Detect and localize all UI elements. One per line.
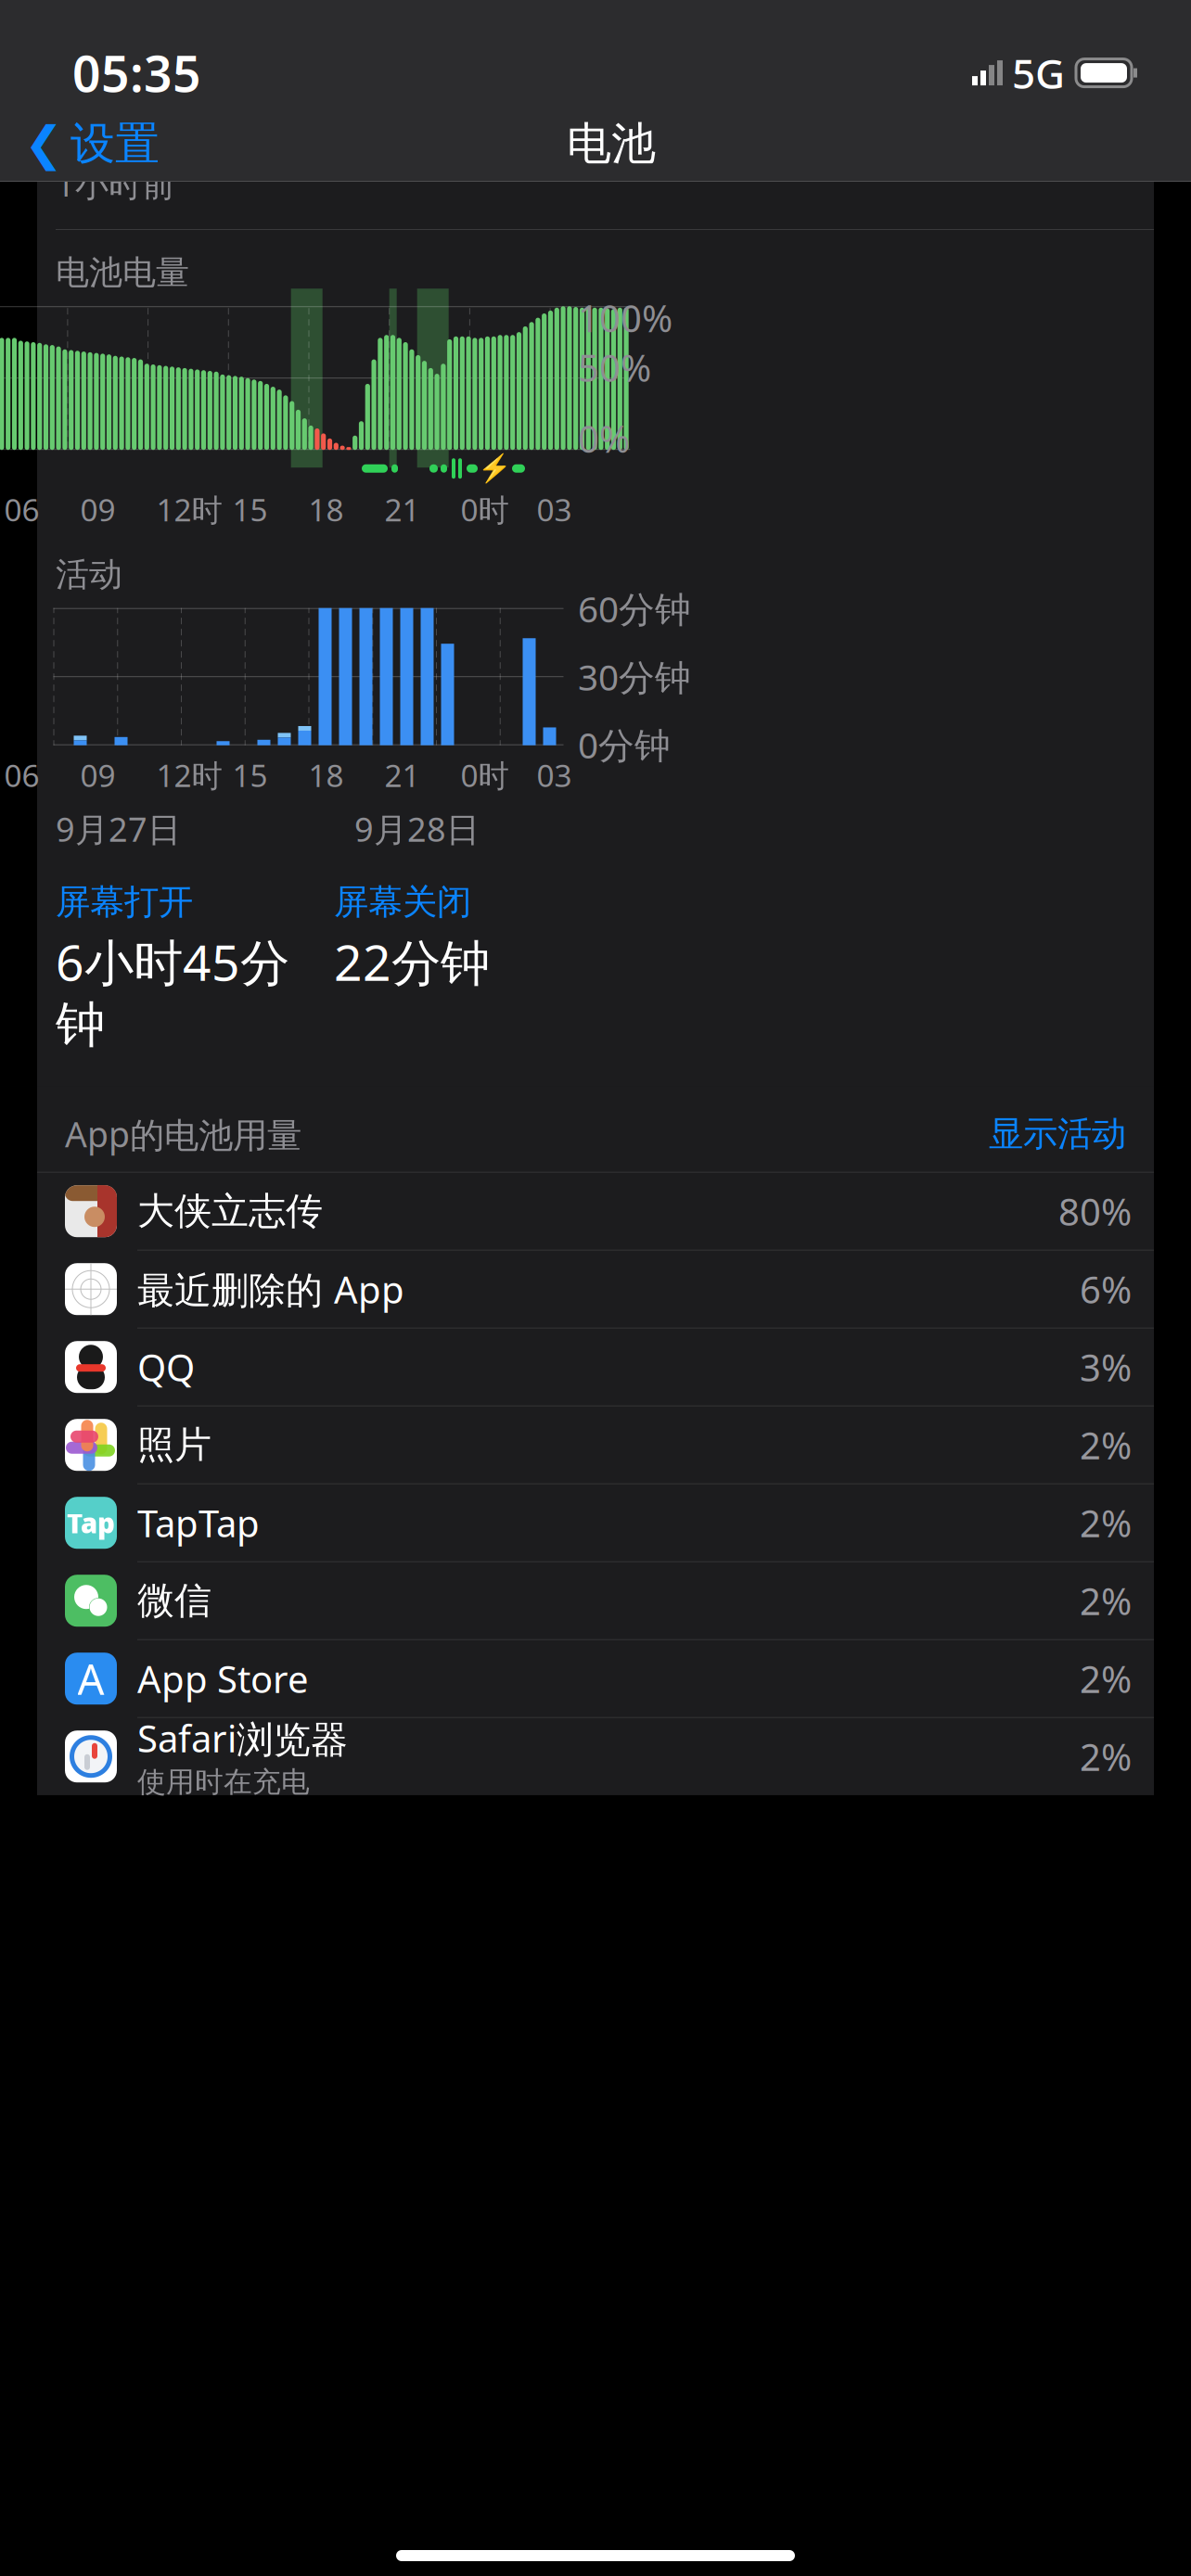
staticText: 30分钟 xyxy=(578,653,691,700)
staticText: TapTap xyxy=(137,1498,260,1547)
button[interactable]: 最近删除的 App xyxy=(37,1251,1154,1329)
staticText: QQ xyxy=(137,1342,195,1392)
staticText: 2% xyxy=(1080,1498,1132,1547)
staticText: 0时 xyxy=(461,489,509,530)
staticText: 12时 xyxy=(156,755,222,796)
button[interactable]: ❮ xyxy=(0,109,171,178)
staticText: 0时 xyxy=(461,755,509,796)
staticText: 18 xyxy=(308,489,344,530)
staticText: 12时 xyxy=(156,489,222,530)
button[interactable]: 照片 xyxy=(37,1406,1154,1484)
staticText: 05:35 xyxy=(72,40,201,106)
staticText: Safari浏览器 xyxy=(137,1713,348,1763)
button[interactable]: A xyxy=(37,1640,1154,1718)
staticText: 09 xyxy=(80,755,115,796)
staticText: 100% xyxy=(578,293,672,342)
staticText: ❮ xyxy=(24,117,63,170)
staticText: 15 xyxy=(232,755,268,796)
staticText: 1小时前 xyxy=(56,162,175,206)
staticText: 大侠立志传 xyxy=(137,1189,323,1234)
staticText: 照片 xyxy=(137,1422,211,1468)
button[interactable]: 大侠立志传 xyxy=(37,1173,1154,1251)
button[interactable]: Tap xyxy=(37,1484,1154,1562)
staticText: 2% xyxy=(1080,1420,1132,1470)
staticText: 21 xyxy=(384,489,420,530)
button[interactable]: Safari浏览器 xyxy=(37,1718,1154,1795)
staticText: 最近删除的 App xyxy=(137,1265,404,1314)
button[interactable]: QQ xyxy=(37,1329,1154,1406)
staticText: App Store xyxy=(137,1654,309,1703)
staticText: 使用时在充电 xyxy=(137,1765,310,1800)
staticText: 显示活动 xyxy=(989,1113,1126,1155)
staticText: 03 xyxy=(537,489,572,530)
staticText: 微信 xyxy=(137,1578,211,1623)
staticText: 50% xyxy=(578,343,651,392)
staticText: 15 xyxy=(232,489,268,530)
staticText: 屏幕打开 xyxy=(56,881,193,923)
staticText: 电池电量 xyxy=(56,252,189,293)
staticText: A xyxy=(77,1651,104,1706)
button[interactable]: 显示活动 xyxy=(989,1113,1126,1155)
staticText: 06 xyxy=(4,489,39,530)
staticText: 0% xyxy=(578,414,630,463)
staticText: Tap xyxy=(67,1505,115,1541)
button[interactable]: 微信 xyxy=(37,1562,1154,1640)
staticText: 2% xyxy=(1080,1576,1132,1625)
staticText: 9月27日 xyxy=(56,807,181,851)
staticText: 2% xyxy=(1080,1654,1132,1703)
staticText: 设置 xyxy=(70,116,160,171)
staticText: 21 xyxy=(384,755,420,796)
staticText: 9月28日 xyxy=(354,807,480,851)
staticText: 0分钟 xyxy=(578,721,671,768)
staticText: 活动 xyxy=(56,554,122,595)
staticText: 09 xyxy=(80,489,115,530)
staticText: 06 xyxy=(4,755,39,796)
staticText: 6% xyxy=(1080,1265,1132,1314)
staticText: ⚡ xyxy=(478,453,512,484)
staticText: 18 xyxy=(308,755,344,796)
staticText: 2% xyxy=(1080,1732,1132,1781)
staticText: 80% xyxy=(1058,1187,1132,1236)
staticText: App的电池用量 xyxy=(65,1111,301,1157)
staticText: 电池 xyxy=(567,116,656,171)
staticText: 3% xyxy=(1080,1342,1132,1392)
staticText: 5G xyxy=(1012,46,1065,100)
staticText: 6小时45分钟 xyxy=(56,929,289,1055)
staticText: 60分钟 xyxy=(578,585,691,632)
staticText: 屏幕关闭 xyxy=(334,881,471,923)
staticText: 03 xyxy=(537,755,572,796)
staticText: 22分钟 xyxy=(334,929,490,994)
